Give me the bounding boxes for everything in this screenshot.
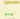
staticText: subtitle	[4, 16, 16, 19]
button[interactable]: Start	[4, 13, 13, 15]
staticText: Lorem ipsum	[3, 0, 19, 5]
staticText: Start	[6, 13, 11, 16]
